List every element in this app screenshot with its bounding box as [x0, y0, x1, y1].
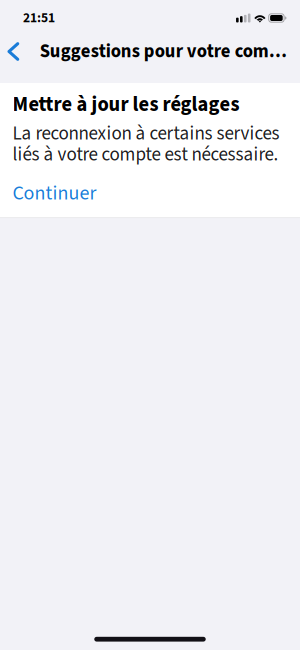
- staticText: Continuer: [12, 179, 96, 208]
- staticText: La reconnexion à certains services liés …: [12, 120, 279, 168]
- button[interactable]: Continuer: [12, 168, 287, 218]
- staticText: Mettre à jour les réglages: [12, 90, 239, 119]
- staticText: Suggestions pour votre com…: [40, 38, 287, 65]
- staticText: 21:51: [23, 8, 55, 28]
- button[interactable]: Back: [0, 36, 40, 67]
